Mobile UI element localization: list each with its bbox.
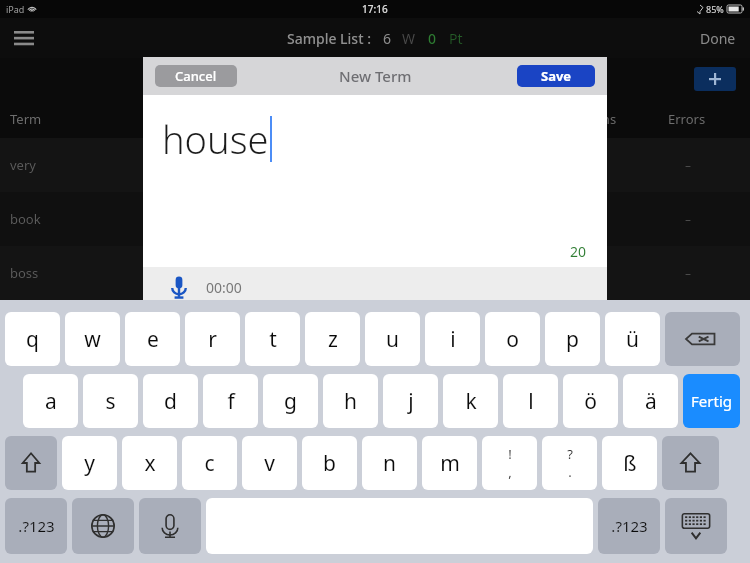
button[interactable]: w [65, 312, 120, 366]
button[interactable]: ö [563, 374, 618, 428]
staticText: f [227, 387, 235, 416]
staticText: e [147, 325, 159, 354]
button[interactable]: Shift [5, 436, 57, 490]
button[interactable]: t [245, 312, 300, 366]
staticText: Done [700, 29, 736, 48]
button[interactable]: b [302, 436, 357, 490]
button[interactable]: ü [605, 312, 660, 366]
button[interactable]: g [263, 374, 318, 428]
staticText: Term [10, 110, 42, 128]
button[interactable]: e [125, 312, 180, 366]
staticText: k [465, 387, 477, 416]
staticText: 6 [383, 29, 392, 48]
staticText: j [408, 387, 414, 416]
staticText: n [383, 449, 396, 478]
button[interactable]: Hide keyboard [665, 498, 727, 554]
button[interactable]: u [365, 312, 420, 366]
staticText: 85% [706, 3, 724, 15]
staticText: Cancel [175, 67, 217, 85]
button[interactable]: Fertig [683, 374, 740, 428]
staticText: Fertig [691, 391, 732, 411]
button[interactable]: z [305, 312, 360, 366]
staticText: x [144, 449, 156, 478]
button[interactable]: a [23, 374, 78, 428]
staticText: q [26, 325, 39, 354]
button[interactable]: Record [166, 274, 192, 300]
staticText: – [685, 211, 692, 227]
button[interactable]: Cancel [155, 65, 237, 87]
staticText: New Term [339, 66, 412, 86]
staticText: d [164, 387, 177, 416]
button[interactable]: f [203, 374, 258, 428]
button[interactable]: ä [623, 374, 678, 428]
button[interactable]: Add [694, 67, 736, 91]
button[interactable]: p [545, 312, 600, 366]
button[interactable]: j [383, 374, 438, 428]
button[interactable]: boss [0, 246, 750, 300]
staticText: r [208, 325, 217, 354]
staticText: m [440, 449, 460, 478]
staticText: t [269, 325, 277, 354]
button[interactable]: m [422, 436, 477, 490]
staticText: ß [623, 449, 637, 478]
staticText: v [264, 449, 275, 478]
staticText: z [328, 325, 338, 354]
staticText: ! , [508, 445, 512, 481]
staticText: boss [10, 264, 39, 282]
staticText: Pt [449, 29, 463, 48]
button[interactable]: ß [602, 436, 657, 490]
staticText: Save [541, 67, 572, 85]
staticText: Sample List : [287, 29, 371, 48]
button[interactable]: ! , [482, 436, 537, 490]
staticText: a [45, 387, 57, 416]
button[interactable]: x [122, 436, 177, 490]
button[interactable]: c [182, 436, 237, 490]
button[interactable]: .?123 [598, 498, 660, 554]
staticText: very [10, 156, 36, 174]
button[interactable]: ? . [542, 436, 597, 490]
staticText: h [344, 387, 357, 416]
staticText: house [162, 113, 269, 165]
button[interactable]: Save [517, 65, 595, 87]
staticText: w [84, 325, 101, 354]
staticText: Errors [668, 110, 706, 128]
button[interactable]: Change keyboard [72, 498, 134, 554]
button[interactable]: d [143, 374, 198, 428]
button[interactable]: Done [696, 25, 740, 52]
button[interactable]: Shift [662, 436, 719, 490]
staticText: 0 [428, 29, 437, 48]
button[interactable]: Backspace [665, 312, 740, 366]
button[interactable]: i [425, 312, 480, 366]
button[interactable]: k [443, 374, 498, 428]
button[interactable]: o [485, 312, 540, 366]
staticText: W [402, 29, 416, 48]
staticText: i [450, 325, 456, 354]
button[interactable]: very [0, 138, 750, 192]
staticText: – [685, 157, 692, 173]
staticText: .?123 [18, 516, 55, 536]
staticText: ä [645, 387, 657, 416]
staticText: iPad [6, 3, 25, 15]
staticText: 17:16 [362, 2, 388, 16]
button[interactable]: v [242, 436, 297, 490]
button[interactable]: s [83, 374, 138, 428]
staticText: 20 [570, 242, 587, 261]
staticText: .?123 [611, 516, 648, 536]
button[interactable]: Dictation [139, 498, 201, 554]
staticText: g [284, 387, 297, 416]
staticText: book [10, 210, 41, 228]
button[interactable]: n [362, 436, 417, 490]
staticText: b [323, 449, 336, 478]
button[interactable]: h [323, 374, 378, 428]
button[interactable]: l [503, 374, 558, 428]
staticText: y [84, 449, 95, 478]
button[interactable]: q [5, 312, 60, 366]
button[interactable]: Menu [8, 22, 40, 54]
button[interactable]: y [62, 436, 117, 490]
staticText: o [506, 325, 519, 354]
button[interactable]: book [0, 192, 750, 246]
button[interactable]: house [143, 95, 607, 267]
button[interactable]: r [185, 312, 240, 366]
button[interactable]: .?123 [5, 498, 67, 554]
